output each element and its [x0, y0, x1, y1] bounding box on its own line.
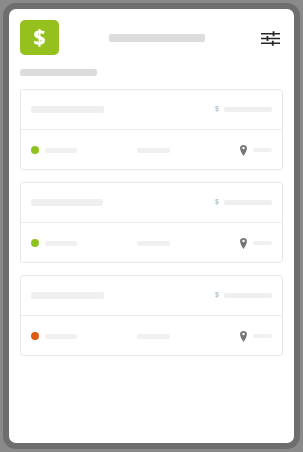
- staticText: $: [215, 104, 220, 114]
- staticText: $: [215, 197, 220, 207]
- staticText: $: [33, 23, 46, 52]
- button[interactable]: Filter: [257, 25, 283, 51]
- button[interactable]: $: [20, 182, 283, 263]
- staticText: $: [215, 290, 220, 300]
- button[interactable]: $: [20, 20, 59, 55]
- button[interactable]: $: [20, 275, 283, 356]
- button[interactable]: $: [20, 89, 283, 170]
